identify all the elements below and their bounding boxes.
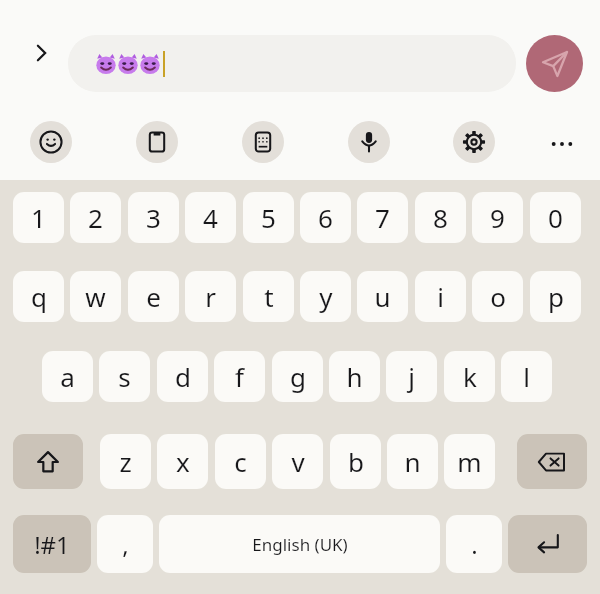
staticText: 1 [31, 200, 46, 235]
button[interactable]: b [330, 434, 381, 489]
staticText: k [463, 359, 477, 394]
staticText: u [374, 279, 391, 314]
staticText: e [146, 279, 161, 314]
button[interactable]: 8 [415, 192, 466, 243]
staticText: 3 [146, 200, 161, 235]
button[interactable]: !#1 [13, 515, 91, 573]
button[interactable]: e [128, 271, 179, 322]
button[interactable]: c [215, 434, 266, 489]
button[interactable]: l [501, 351, 552, 402]
button[interactable]: 6 [300, 192, 351, 243]
staticText: s [118, 359, 131, 394]
button[interactable]: 3 [128, 192, 179, 243]
button[interactable]: Keyboard tool [348, 121, 390, 163]
button[interactable] [68, 35, 516, 92]
staticText: l [523, 359, 530, 394]
staticText: 6 [318, 200, 333, 235]
staticText: 8 [433, 200, 448, 235]
staticText: i [437, 279, 444, 314]
staticText: 4 [203, 200, 218, 235]
staticText: 9 [490, 200, 505, 235]
staticText: b [348, 444, 364, 479]
staticText: 5 [261, 200, 276, 235]
staticText: p [548, 279, 564, 314]
button[interactable]: u [357, 271, 408, 322]
staticText: 2 [88, 200, 103, 235]
button[interactable]: English (UK) [159, 515, 440, 573]
button[interactable]: o [472, 271, 523, 322]
button[interactable]: g [272, 351, 323, 402]
staticText: d [175, 359, 191, 394]
button[interactable]: 5 [243, 192, 294, 243]
staticText: English (UK) [252, 533, 348, 556]
staticText: f [235, 359, 244, 394]
button[interactable]: Backspace [517, 434, 587, 489]
button[interactable]: h [329, 351, 380, 402]
button[interactable]: Expand [21, 40, 61, 66]
staticText: m [457, 444, 482, 479]
button[interactable]: Keyboard tool [242, 121, 284, 163]
staticText: !#1 [34, 528, 70, 561]
staticText: y [319, 279, 333, 314]
button[interactable]: w [70, 271, 121, 322]
button[interactable]: s [99, 351, 150, 402]
button[interactable]: Keyboard tool [30, 121, 72, 163]
staticText: v [291, 444, 305, 479]
staticText: t [264, 279, 274, 314]
button[interactable]: r [185, 271, 236, 322]
staticText: r [205, 279, 216, 314]
staticText: a [60, 359, 75, 394]
staticText: , [122, 528, 129, 561]
button[interactable]: t [243, 271, 294, 322]
button[interactable]: Shift [13, 434, 83, 489]
button[interactable]: f [214, 351, 265, 402]
staticText: z [119, 444, 132, 479]
button[interactable]: v [272, 434, 323, 489]
staticText: g [290, 359, 306, 394]
button[interactable]: p [530, 271, 581, 322]
button[interactable]: Send [526, 35, 583, 92]
button[interactable]: 7 [357, 192, 408, 243]
button[interactable]: 2 [70, 192, 121, 243]
staticText: . [471, 528, 478, 561]
button[interactable]: q [13, 271, 64, 322]
staticText: 0 [548, 200, 563, 235]
button[interactable]: 9 [472, 192, 523, 243]
staticText: x [176, 444, 190, 479]
button[interactable]: 1 [13, 192, 64, 243]
button[interactable]: i [415, 271, 466, 322]
button[interactable]: k [444, 351, 495, 402]
button[interactable]: . [446, 515, 502, 573]
button[interactable]: Keyboard tool [453, 121, 495, 163]
button[interactable]: 4 [185, 192, 236, 243]
button[interactable]: a [42, 351, 93, 402]
button[interactable]: m [444, 434, 495, 489]
button[interactable]: n [387, 434, 438, 489]
staticText: w [85, 279, 106, 314]
staticText: 7 [375, 200, 390, 235]
button[interactable]: z [100, 434, 151, 489]
button[interactable]: 0 [530, 192, 581, 243]
staticText: j [408, 359, 415, 394]
staticText: n [404, 444, 421, 479]
button[interactable]: Enter [508, 515, 587, 573]
button[interactable]: Keyboard tool [136, 121, 178, 163]
button[interactable]: More options [541, 123, 583, 165]
staticText: h [346, 359, 363, 394]
staticText: c [234, 444, 247, 479]
staticText: q [31, 279, 47, 314]
button[interactable]: x [157, 434, 208, 489]
button[interactable]: d [157, 351, 208, 402]
button[interactable]: j [386, 351, 437, 402]
staticText: o [490, 279, 506, 314]
button[interactable]: y [300, 271, 351, 322]
button[interactable]: , [97, 515, 153, 573]
